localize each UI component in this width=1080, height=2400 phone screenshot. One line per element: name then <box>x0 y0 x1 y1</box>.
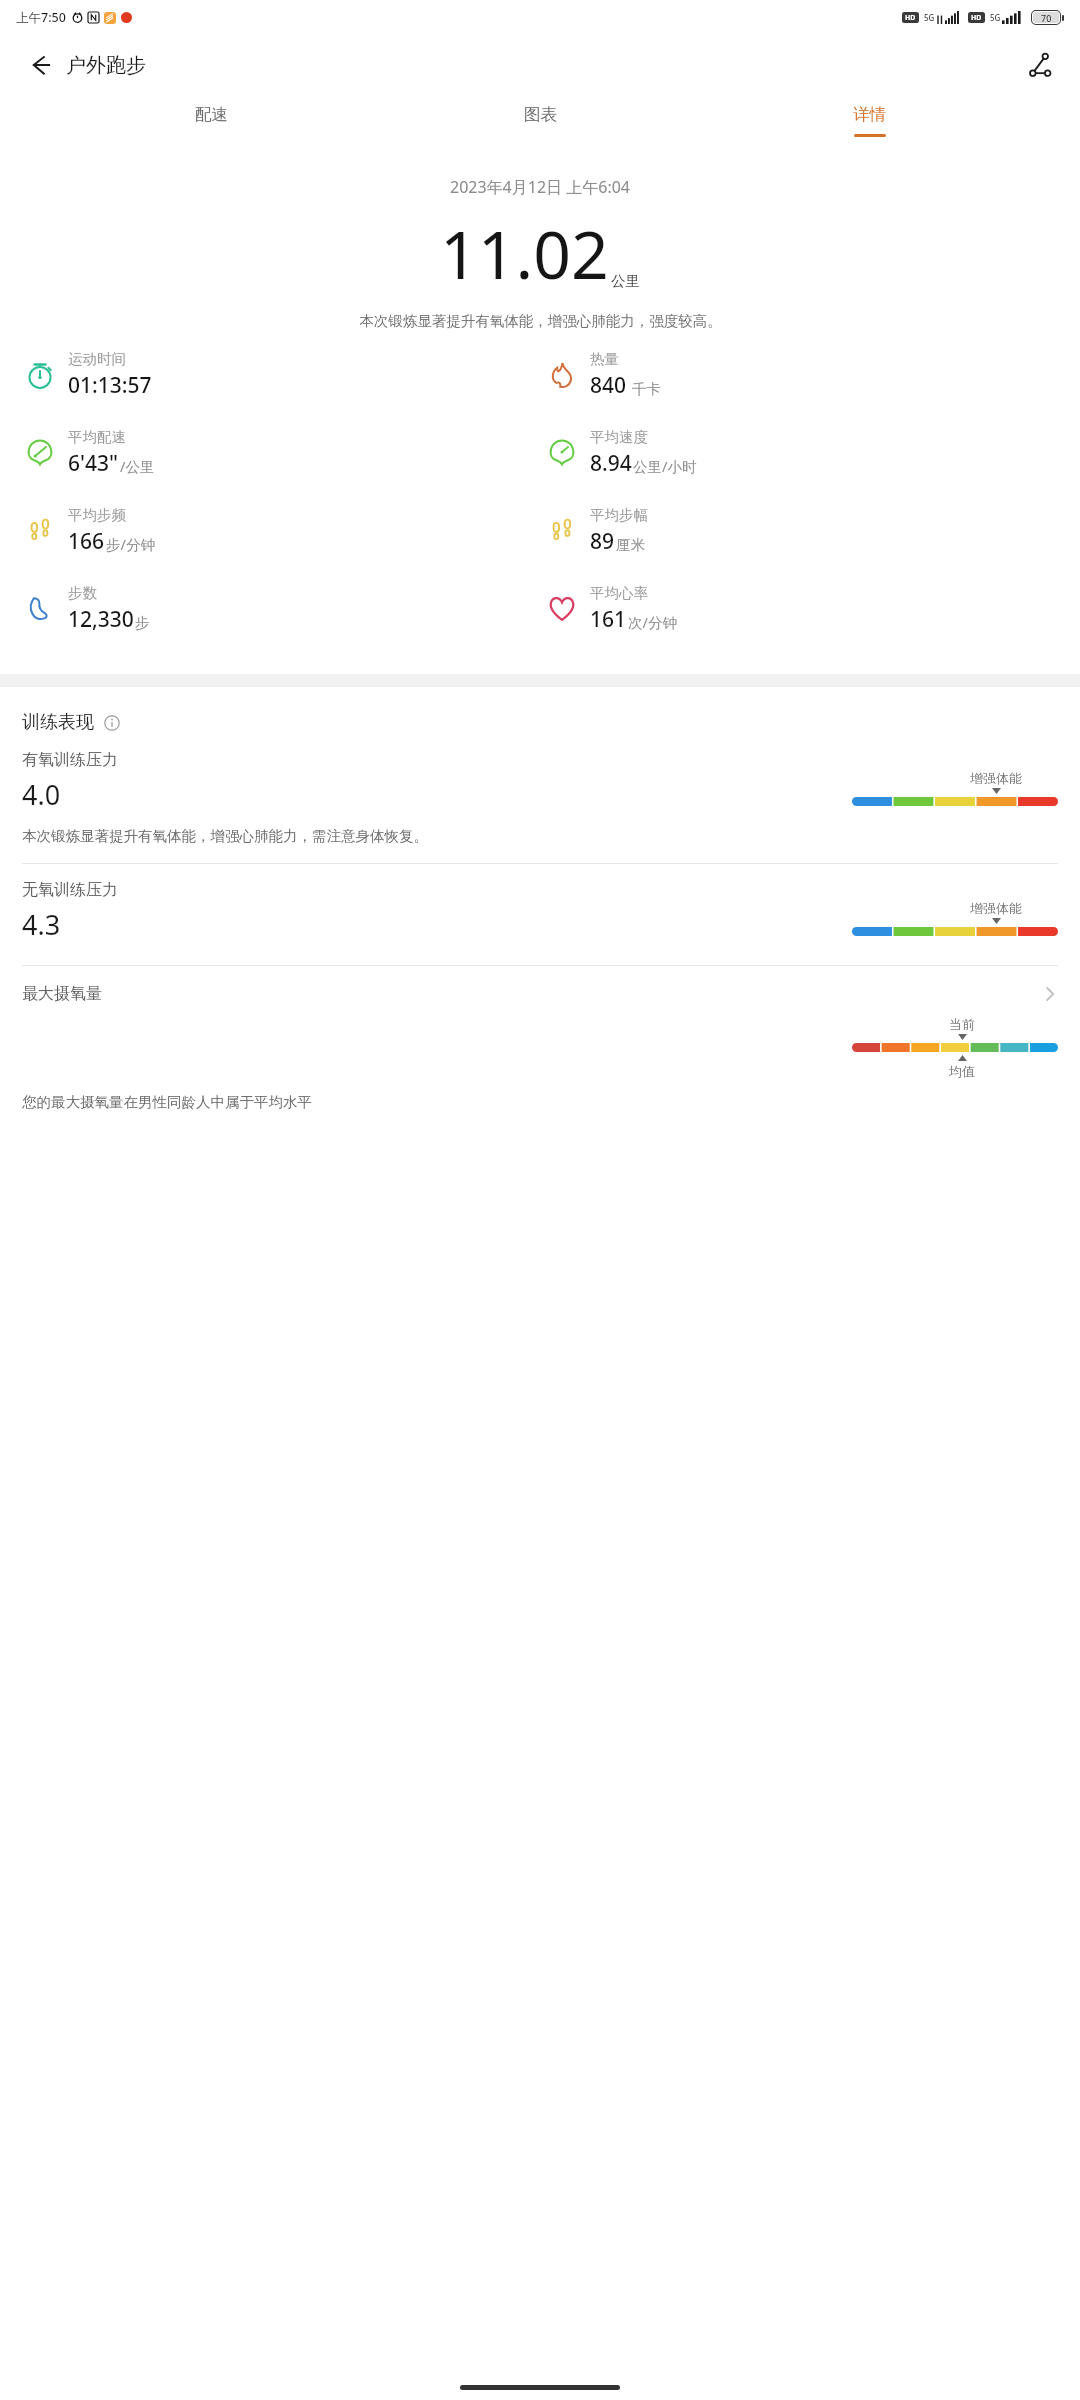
staticText: 配速 <box>195 104 228 125</box>
staticText: 运动时间 <box>68 350 126 368</box>
button[interactable]: 平均配速 <box>22 428 544 478</box>
button[interactable]: Info <box>101 712 123 734</box>
staticText: /公里 <box>120 456 155 476</box>
button[interactable]: 步数 <box>22 584 544 634</box>
staticText: 公里/小时 <box>633 456 697 476</box>
staticText: 训练表现 <box>22 711 94 734</box>
button[interactable]: 热量 <box>544 350 1066 400</box>
staticText: 平均步频 <box>68 506 126 524</box>
staticText: 8.94 <box>590 449 632 478</box>
staticText: 12,330 <box>68 605 134 634</box>
staticText: 厘米 <box>616 536 645 554</box>
staticText: 图表 <box>524 104 557 125</box>
button[interactable]: Share <box>1018 43 1062 87</box>
staticText: 平均速度 <box>590 428 648 446</box>
staticText: HD <box>971 13 982 23</box>
button[interactable]: 图表 <box>376 96 705 134</box>
staticText: 840 <box>590 371 627 400</box>
staticText: 您的最大摄氧量在男性同龄人中属于平均水平 <box>22 1093 312 1111</box>
button[interactable]: 平均速度 <box>544 428 1066 478</box>
staticText: 5G <box>924 12 935 23</box>
staticText: 11.02 <box>440 208 609 298</box>
staticText: 无氧训练压力 <box>22 880 118 900</box>
staticText: 户外跑步 <box>66 53 146 78</box>
staticText: 4.3 <box>22 906 61 943</box>
staticText: 上午7:50 <box>16 9 66 26</box>
staticText: 平均配速 <box>68 428 126 446</box>
staticText: 千卡 <box>628 378 661 398</box>
staticText: 步 <box>135 614 150 632</box>
staticText: 2023年4月12日 上午6:04 <box>450 176 630 198</box>
staticText: 平均步幅 <box>590 506 648 524</box>
staticText: 161 <box>590 605 627 634</box>
button[interactable]: 最大摄氧量 <box>0 966 1080 1131</box>
staticText: 01:13:57 <box>68 371 152 400</box>
button[interactable]: 配速 <box>46 96 376 134</box>
button[interactable]: 无氧训练压力 <box>0 864 1080 965</box>
staticText: HD <box>905 13 916 23</box>
staticText: 有氧训练压力 <box>22 750 118 770</box>
staticText: 89 <box>590 527 615 556</box>
staticText: 5G <box>990 12 1001 23</box>
staticText: 4.0 <box>22 776 61 813</box>
staticText: 热量 <box>590 350 619 368</box>
button[interactable]: 平均步幅 <box>544 506 1066 556</box>
staticText: 当前 <box>949 1016 975 1032</box>
button[interactable]: 平均步频 <box>22 506 544 556</box>
staticText: 本次锻炼显著提升有氧体能，增强心肺能力，需注意身体恢复。 <box>22 827 428 845</box>
staticText: 70 <box>1041 12 1052 23</box>
staticText: 本次锻炼显著提升有氧体能，增强心肺能力，强度较高。 <box>359 312 722 330</box>
staticText: 166 <box>68 527 105 556</box>
staticText: 公里 <box>611 272 640 290</box>
button[interactable]: Back <box>18 43 62 87</box>
staticText: 次/分钟 <box>628 612 677 632</box>
staticText: 详情 <box>853 104 886 125</box>
staticText: 步数 <box>68 584 97 602</box>
staticText: 均值 <box>949 1063 975 1079</box>
button[interactable]: 有氧训练压力 <box>0 734 1080 863</box>
staticText: 6'43" <box>68 449 119 478</box>
button[interactable]: 运动时间 <box>22 350 544 400</box>
staticText: 平均心率 <box>590 584 648 602</box>
staticText: 增强体能 <box>970 770 1022 786</box>
staticText: 最大摄氧量 <box>22 984 102 1004</box>
staticText: 增强体能 <box>970 900 1022 916</box>
staticText: 步/分钟 <box>106 534 155 554</box>
button[interactable]: 详情 <box>705 96 1034 137</box>
button[interactable]: 平均心率 <box>544 584 1066 634</box>
